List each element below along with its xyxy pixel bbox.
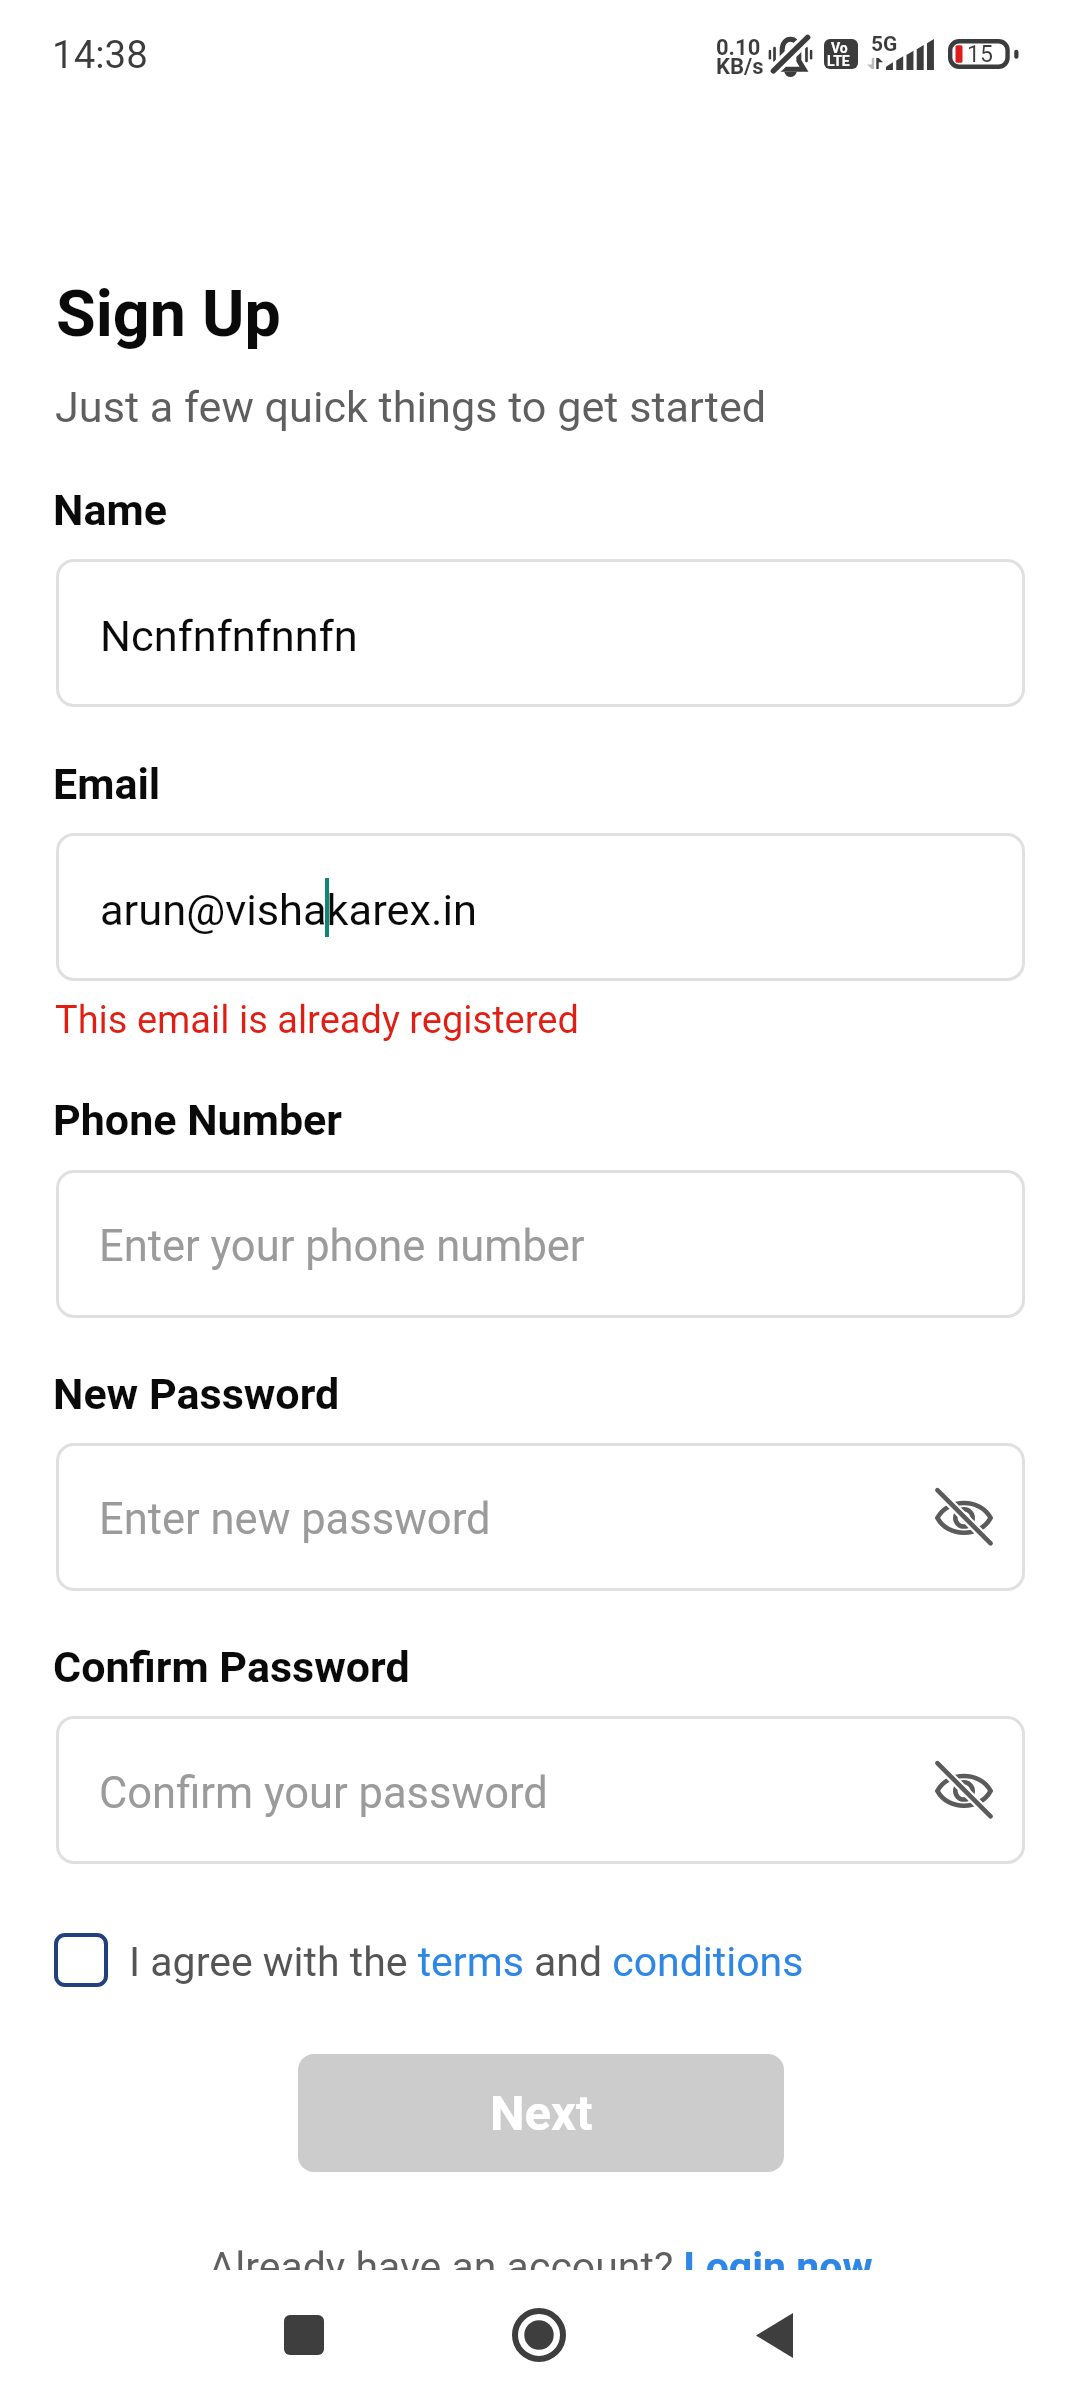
staticText: Ncnfnfnfnnfn	[100, 611, 358, 662]
button[interactable]	[56, 833, 1025, 981]
staticText: Name	[53, 485, 167, 535]
staticText: New Password	[53, 1369, 340, 1419]
staticText: Enter your phone number	[99, 1221, 585, 1272]
staticText: Email	[53, 759, 161, 809]
staticText: Enter new password	[99, 1494, 491, 1545]
staticText: This email is already registered	[55, 998, 579, 1043]
staticText: Already have an account? Login now	[208, 2243, 873, 2270]
staticText: Next	[490, 2085, 593, 2142]
button[interactable]: Recents	[266, 2297, 342, 2373]
button[interactable]: Back	[736, 2297, 812, 2373]
staticText: Just a few quick things to get started	[55, 382, 767, 433]
staticText: Sign Up	[56, 276, 281, 352]
staticText: I agree with the terms and conditions	[129, 1938, 804, 1986]
staticText: Vo	[831, 40, 848, 56]
button[interactable]: I agree with the terms and conditions	[129, 1938, 804, 1986]
staticText: 14:38	[52, 32, 148, 77]
button[interactable]	[56, 559, 1025, 707]
button[interactable]: Show password	[930, 1756, 998, 1824]
staticText: 5G	[871, 32, 898, 57]
staticText: KB/s	[716, 54, 764, 80]
button[interactable]	[56, 1170, 1025, 1318]
button[interactable]: Next	[298, 2054, 784, 2172]
button[interactable]	[56, 1716, 1025, 1864]
staticText: LTE	[827, 53, 850, 69]
staticText: 0.10	[716, 35, 761, 61]
button[interactable]: Home	[501, 2297, 577, 2373]
staticText: Phone Number	[53, 1095, 343, 1145]
staticText: 15	[967, 41, 993, 68]
staticText: arun@vishakarex.in	[100, 885, 477, 936]
button[interactable]	[56, 1443, 1025, 1591]
button[interactable]: Show password	[930, 1483, 998, 1551]
staticText: Confirm Password	[53, 1642, 410, 1692]
staticText: Confirm your password	[99, 1768, 548, 1819]
button[interactable]: Already have an account? Login now	[0, 2243, 1080, 2270]
button[interactable]: Agree to terms	[54, 1933, 108, 1987]
